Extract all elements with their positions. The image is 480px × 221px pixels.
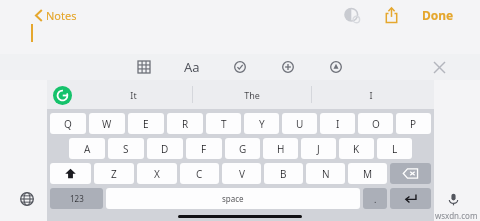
button[interactable]: It — [75, 80, 192, 109]
button[interactable]: U — [282, 113, 317, 134]
button[interactable]: D — [147, 138, 183, 159]
staticText: J — [317, 142, 320, 156]
button[interactable]: Grammarly — [51, 84, 73, 106]
button[interactable]: V — [222, 163, 261, 184]
button[interactable]: R — [167, 113, 203, 134]
button[interactable]: S — [108, 138, 144, 159]
button[interactable]: J — [301, 138, 336, 159]
button[interactable]: B — [264, 163, 303, 184]
button[interactable]: I — [320, 113, 355, 134]
staticText: V — [239, 167, 245, 181]
button[interactable]: Switch keyboard — [17, 189, 37, 209]
button[interactable]: Dictate — [443, 189, 463, 209]
button[interactable]: The — [193, 80, 311, 109]
button[interactable]: Y — [244, 113, 279, 134]
staticText: S — [123, 142, 129, 156]
button[interactable]: Notes — [32, 4, 80, 27]
staticText: Q — [64, 117, 72, 131]
button[interactable]: W — [89, 113, 125, 134]
button[interactable]: I — [312, 80, 430, 109]
staticText: Done — [422, 7, 454, 23]
button[interactable]: . — [363, 188, 387, 209]
staticText: H — [277, 142, 285, 156]
staticText: C — [196, 167, 203, 181]
staticText: Notes — [46, 8, 77, 23]
button[interactable]: A — [69, 138, 105, 159]
staticText: F — [201, 142, 207, 156]
staticText: W — [102, 117, 112, 131]
staticText: M — [363, 167, 373, 181]
button[interactable]: Z — [94, 163, 134, 184]
staticText: U — [296, 117, 304, 131]
button[interactable]: X — [137, 163, 177, 184]
staticText: E — [143, 117, 149, 131]
button[interactable]: T — [206, 113, 241, 134]
staticText: The — [244, 89, 260, 101]
button[interactable]: More — [340, 3, 364, 27]
staticText: L — [392, 142, 398, 156]
button[interactable]: K — [339, 138, 374, 159]
button[interactable]: Add attachment — [275, 54, 301, 80]
button[interactable]: Table — [131, 54, 157, 80]
staticText: wsxdn.com — [435, 210, 478, 221]
staticText: X — [154, 167, 160, 181]
button[interactable]: C — [180, 163, 219, 184]
button[interactable]: 123 — [50, 188, 103, 209]
button[interactable]: G — [225, 138, 260, 159]
button[interactable]: E — [128, 113, 164, 134]
staticText: Aa — [184, 58, 200, 76]
staticText: space — [222, 193, 244, 204]
button[interactable]: Checklist — [227, 54, 253, 80]
button[interactable]: Share — [378, 2, 404, 28]
staticText: G — [239, 142, 247, 156]
button[interactable]: F — [186, 138, 222, 159]
staticText: B — [280, 167, 287, 181]
staticText: A — [84, 142, 91, 156]
button[interactable]: P — [396, 113, 431, 134]
button[interactable]: Done — [418, 3, 458, 27]
button[interactable]: Shift — [50, 163, 91, 184]
button[interactable]: O — [358, 113, 393, 134]
staticText: Y — [259, 117, 265, 131]
button[interactable]: Aa — [179, 54, 205, 80]
staticText: It — [130, 89, 137, 101]
button[interactable]: Markup — [323, 54, 349, 80]
button[interactable]: Q — [50, 113, 86, 134]
staticText: I — [336, 117, 340, 131]
staticText: K — [353, 142, 360, 156]
staticText: T — [221, 117, 227, 131]
staticText: 123 — [70, 193, 84, 204]
button[interactable]: M — [348, 163, 387, 184]
staticText: Z — [111, 167, 117, 181]
button[interactable]: Backspace — [390, 163, 431, 184]
staticText: . — [374, 193, 377, 205]
staticText: I — [369, 89, 373, 101]
button[interactable]: N — [306, 163, 345, 184]
staticText: O — [372, 117, 380, 131]
button[interactable]: Return — [390, 188, 431, 209]
button[interactable]: L — [377, 138, 412, 159]
staticText: D — [161, 142, 169, 156]
button[interactable]: H — [263, 138, 298, 159]
staticText: P — [410, 117, 417, 131]
button[interactable]: space — [106, 188, 360, 209]
staticText: R — [182, 117, 189, 131]
button[interactable]: Close — [428, 56, 450, 78]
staticText: N — [322, 167, 330, 181]
